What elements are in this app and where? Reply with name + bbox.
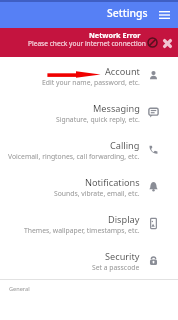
button[interactable]: Display — [0, 205, 178, 242]
button[interactable]: Account — [0, 57, 178, 94]
staticText: Calling — [110, 139, 140, 152]
button[interactable]: Security — [0, 242, 178, 279]
staticText: Themes, wallpaper, timestamps, etc. — [24, 226, 140, 235]
button[interactable]: Dismiss — [159, 35, 175, 51]
staticText: Notifications — [85, 176, 140, 189]
staticText: Settings — [107, 6, 148, 20]
button[interactable]: Menu — [154, 5, 174, 25]
staticText: Edit your name, password, etc. — [42, 78, 140, 87]
staticText: Set a passcode — [92, 263, 140, 272]
staticText: Signature, quick reply, etc. — [56, 115, 140, 124]
staticText: Sounds, vibrate, email, etc. — [54, 189, 140, 198]
staticText: Account — [105, 65, 140, 78]
staticText: Display — [108, 213, 140, 226]
staticText: General — [9, 285, 30, 293]
button[interactable]: Calling — [0, 131, 178, 168]
staticText: Security — [105, 250, 140, 263]
button[interactable]: Notifications — [0, 168, 178, 205]
staticText: Please check your internet connection — [28, 39, 146, 48]
staticText: Messaging — [93, 102, 140, 115]
staticText: Voicemail, ringtones, call forwarding, e… — [8, 152, 140, 161]
button[interactable]: Messaging — [0, 94, 178, 131]
staticText: Network Error — [89, 30, 141, 40]
